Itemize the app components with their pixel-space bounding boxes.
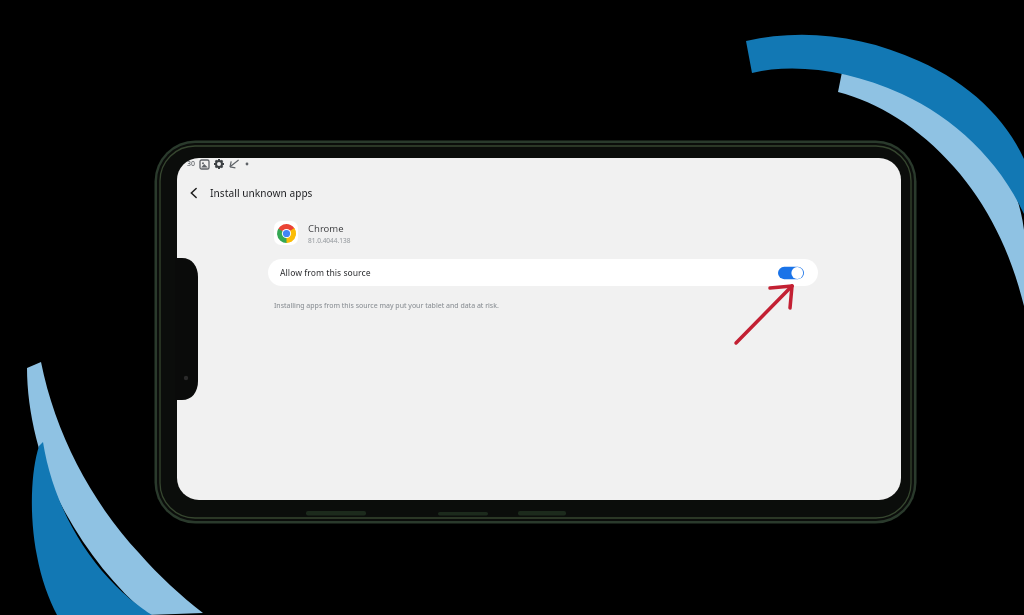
staticText: Install unknown apps [210, 186, 313, 200]
staticText: Chrome [308, 222, 344, 235]
staticText: Installing apps from this source may put… [274, 301, 499, 311]
button[interactable]: Allow from this source, on [778, 266, 804, 280]
button[interactable]: Allow from this source [268, 259, 818, 286]
button[interactable]: Chrome [274, 221, 351, 245]
staticText: Allow from this source [280, 267, 371, 279]
staticText: 81.0.4044.138 [308, 236, 351, 245]
staticText: 30 [187, 159, 196, 169]
button[interactable]: Back [183, 182, 205, 204]
